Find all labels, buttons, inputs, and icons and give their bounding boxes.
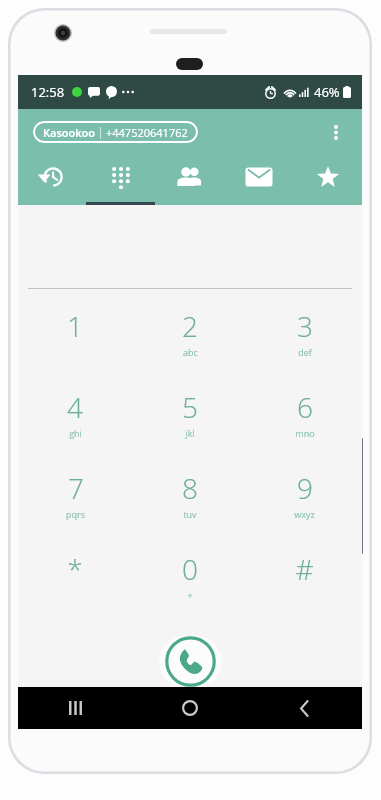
staticText: +447520641762 xyxy=(106,125,188,140)
button[interactable]: Recent apps xyxy=(18,687,132,729)
staticText: wxyz xyxy=(294,508,315,520)
button[interactable]: Dialpad xyxy=(86,154,155,205)
button[interactable]: 5 xyxy=(132,388,247,469)
staticText: jkl xyxy=(185,427,195,439)
staticText: + xyxy=(187,589,193,601)
staticText: 2 xyxy=(182,307,198,345)
button[interactable]: * xyxy=(18,550,132,631)
staticText: 1 xyxy=(67,307,83,345)
staticText: tuv xyxy=(183,508,197,520)
staticText: pqrs xyxy=(66,508,85,520)
button[interactable]: 3 xyxy=(247,307,362,388)
button[interactable]: 6 xyxy=(247,388,362,469)
staticText: def xyxy=(298,346,312,358)
button[interactable]: 0 xyxy=(132,550,247,631)
button[interactable]: Home xyxy=(132,687,247,729)
button[interactable]: # xyxy=(247,550,362,631)
staticText: ghi xyxy=(69,427,82,439)
staticText: # xyxy=(295,550,314,588)
staticText: 0 xyxy=(182,550,198,588)
staticText: abc xyxy=(183,346,198,358)
staticText: 46% xyxy=(314,83,340,101)
staticText: 8 xyxy=(182,469,198,507)
staticText: 12:58 xyxy=(31,83,65,101)
button[interactable]: 4 xyxy=(18,388,132,469)
button[interactable]: 2 xyxy=(132,307,247,388)
button[interactable]: Recents xyxy=(18,154,86,205)
button[interactable]: 1 xyxy=(18,307,132,388)
button[interactable]: 8 xyxy=(132,469,247,550)
button[interactable]: 7 xyxy=(18,469,132,550)
button[interactable]: Call xyxy=(159,636,222,687)
staticText: 5 xyxy=(182,388,198,426)
button[interactable]: 9 xyxy=(247,469,362,550)
button[interactable]: Back xyxy=(247,687,362,729)
staticText: Kasookoo xyxy=(43,125,95,140)
staticText: 4 xyxy=(67,388,83,426)
staticText: 3 xyxy=(297,307,313,345)
button[interactable]: Messages xyxy=(224,154,293,205)
staticText: 9 xyxy=(297,469,313,507)
staticText: mno xyxy=(295,427,315,439)
button[interactable]: Kasookoo xyxy=(33,121,198,143)
button[interactable]: More options xyxy=(321,117,351,147)
staticText: 7 xyxy=(68,469,84,507)
button[interactable]: Favourites xyxy=(293,154,362,205)
staticText: 6 xyxy=(297,388,313,426)
button[interactable]: Contacts xyxy=(155,154,224,205)
staticText: * xyxy=(67,550,83,588)
